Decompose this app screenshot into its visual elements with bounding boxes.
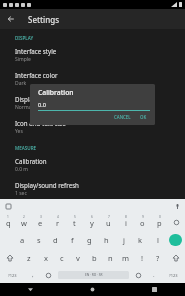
button[interactable]: 0 bbox=[151, 213, 168, 231]
button[interactable]: 3 bbox=[32, 213, 49, 231]
staticText: 0.0 bbox=[38, 101, 46, 109]
button[interactable]: 5 bbox=[66, 213, 83, 231]
staticText: DISPLAY bbox=[15, 35, 34, 41]
staticText: n bbox=[108, 253, 113, 263]
staticText: Calibration bbox=[15, 157, 47, 165]
button[interactable]: j bbox=[115, 231, 132, 249]
button[interactable]: l bbox=[149, 231, 166, 249]
button[interactable]: g bbox=[81, 231, 98, 249]
staticText: 0 bbox=[159, 215, 161, 219]
staticText: t bbox=[73, 218, 76, 228]
button[interactable]: 1 bbox=[0, 213, 16, 231]
button[interactable]: f bbox=[64, 231, 81, 249]
staticText: z bbox=[27, 253, 31, 263]
button[interactable]: 7 bbox=[100, 213, 117, 231]
button[interactable]: Interface style bbox=[0, 43, 185, 67]
button[interactable]: d bbox=[47, 231, 64, 249]
button[interactable]: Home bbox=[61, 283, 123, 296]
staticText: s bbox=[37, 235, 41, 245]
button[interactable]: x bbox=[37, 249, 54, 267]
staticText: Display/sound refresh bbox=[15, 181, 79, 189]
staticText: k bbox=[138, 235, 143, 245]
staticText: OK bbox=[140, 114, 147, 120]
button[interactable]: ?123 bbox=[161, 267, 185, 283]
staticText: ? bbox=[156, 253, 160, 263]
button[interactable]: 8 bbox=[117, 213, 134, 231]
button[interactable]: 6 bbox=[83, 213, 100, 231]
staticText: v bbox=[76, 253, 80, 263]
staticText: x bbox=[44, 253, 48, 263]
button[interactable]: 4 bbox=[49, 213, 66, 231]
staticText: 0.0 m bbox=[15, 166, 29, 173]
button[interactable]: Shift bbox=[166, 249, 185, 267]
button[interactable]: OK bbox=[137, 112, 150, 122]
button[interactable]: Voice input bbox=[172, 201, 182, 211]
button[interactable]: Icon and text size bbox=[0, 115, 185, 139]
button[interactable]: Space bbox=[58, 271, 129, 279]
staticText: 3 bbox=[40, 215, 42, 219]
staticText: w bbox=[21, 218, 27, 228]
button[interactable]: Back bbox=[0, 283, 61, 296]
staticText: Yes bbox=[15, 128, 23, 135]
button[interactable]: Language bbox=[131, 267, 146, 283]
button[interactable]: . bbox=[146, 267, 161, 283]
button[interactable]: b bbox=[86, 249, 102, 267]
button[interactable]: ! bbox=[134, 249, 150, 267]
button[interactable]: Display/sound refresh bbox=[0, 177, 185, 201]
staticText: d bbox=[53, 235, 58, 245]
button[interactable]: s bbox=[30, 231, 47, 249]
staticText: Dark bbox=[15, 80, 27, 87]
staticText: Settings bbox=[28, 14, 60, 25]
button[interactable]: v bbox=[70, 249, 86, 267]
button[interactable]: CANCEL bbox=[111, 112, 134, 122]
button[interactable]: ? bbox=[150, 249, 166, 267]
button[interactable]: Recent apps bbox=[123, 283, 185, 296]
button[interactable]: Display orientation bbox=[0, 91, 185, 115]
staticText: . bbox=[153, 271, 155, 279]
button[interactable]: Calibration bbox=[0, 153, 185, 177]
button[interactable]: z bbox=[20, 249, 37, 267]
staticText: g bbox=[87, 235, 92, 245]
staticText: Calibration bbox=[38, 88, 74, 97]
staticText: y bbox=[90, 218, 94, 228]
staticText: Display orientation bbox=[15, 95, 71, 103]
staticText: 6 bbox=[91, 215, 93, 219]
button[interactable]: h bbox=[98, 231, 115, 249]
staticText: ?123 bbox=[8, 273, 17, 278]
staticText: j bbox=[123, 235, 125, 245]
staticText: l bbox=[157, 235, 159, 245]
staticText: , bbox=[32, 271, 34, 279]
button[interactable]: n bbox=[102, 249, 118, 267]
staticText: EN · RO · SR bbox=[85, 273, 103, 277]
staticText: Normal bbox=[15, 104, 33, 111]
staticText: c bbox=[60, 253, 64, 263]
button[interactable]: Shift bbox=[0, 249, 20, 267]
button[interactable]: 2 bbox=[16, 213, 32, 231]
button[interactable]: 9 bbox=[134, 213, 151, 231]
staticText: MEASURE bbox=[15, 145, 37, 151]
button[interactable]: m bbox=[118, 249, 134, 267]
button[interactable]: Delete bbox=[168, 213, 185, 231]
staticText: o bbox=[140, 218, 145, 228]
button[interactable]: k bbox=[132, 231, 149, 249]
button[interactable]: a bbox=[14, 231, 30, 249]
staticText: Simple bbox=[15, 56, 31, 63]
staticText: Interface style bbox=[15, 47, 57, 55]
staticText: 1 sec bbox=[15, 190, 27, 197]
button[interactable]: Emoji bbox=[41, 267, 56, 283]
button[interactable]: c bbox=[54, 249, 70, 267]
button[interactable]: Navigate up bbox=[0, 9, 22, 29]
button[interactable]: Interface color bbox=[0, 67, 185, 91]
button[interactable]: Clipboard bbox=[3, 201, 13, 211]
staticText: 4 bbox=[57, 215, 59, 219]
button[interactable]: , bbox=[25, 267, 41, 283]
button[interactable]: Enter bbox=[169, 234, 182, 246]
staticText: 1 bbox=[7, 215, 9, 219]
staticText: r bbox=[56, 218, 60, 228]
button[interactable]: ?123 bbox=[0, 267, 25, 283]
staticText: b bbox=[92, 253, 97, 263]
staticText: i bbox=[125, 218, 127, 228]
staticText: 5 bbox=[74, 215, 76, 219]
staticText: a bbox=[20, 235, 25, 245]
staticText: CANCEL bbox=[114, 114, 131, 120]
